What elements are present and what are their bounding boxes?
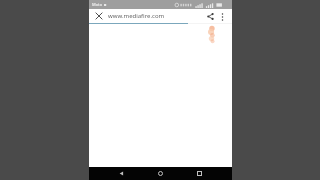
staticText: Moto [92,2,103,7]
button[interactable]: Back [115,167,128,180]
staticText: www.mediafire.com [108,12,165,20]
button[interactable]: Recent apps [193,167,206,180]
button[interactable]: Close [93,10,105,22]
button[interactable]: Home [154,167,167,180]
button[interactable]: More options [217,11,228,22]
button[interactable]: Share [204,10,217,23]
